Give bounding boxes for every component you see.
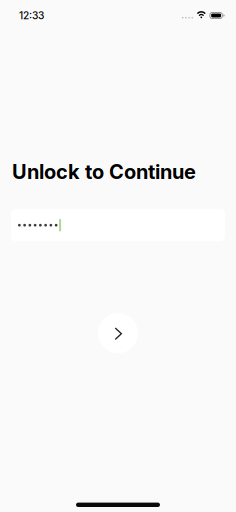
button[interactable]: Passcode: [11, 209, 225, 241]
staticText: Unlock to Continue: [12, 159, 196, 184]
button[interactable]: Continue: [98, 313, 138, 353]
staticText: 12:33: [19, 9, 44, 22]
